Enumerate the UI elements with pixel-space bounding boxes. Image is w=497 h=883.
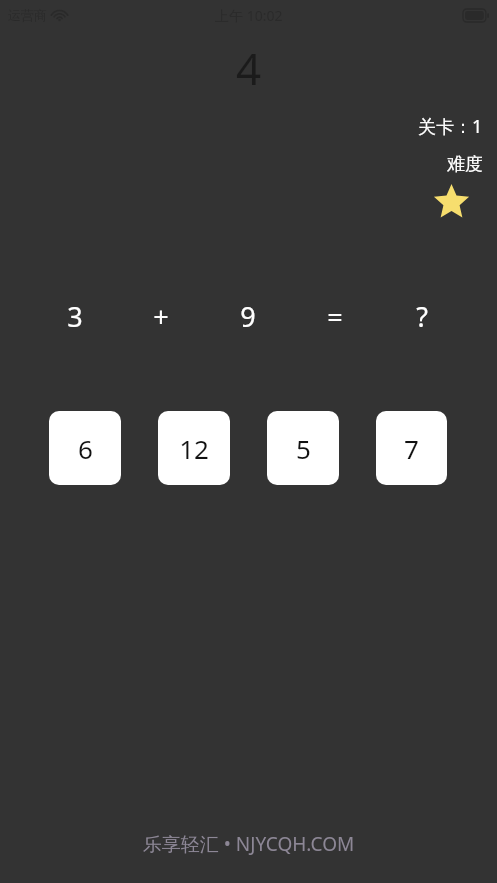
button[interactable]: 12 [158, 411, 230, 485]
button[interactable]: 7 [376, 411, 447, 485]
button[interactable]: 5 [267, 411, 339, 485]
staticText: 3 [67, 298, 83, 335]
button[interactable]: 6 [49, 411, 121, 485]
staticText: 9 [240, 298, 256, 335]
other: Battery [463, 9, 489, 22]
staticText: 6 [78, 431, 93, 466]
staticText: 关卡：1 [418, 114, 483, 139]
staticText: 7 [404, 431, 419, 466]
staticText: + [153, 298, 169, 335]
staticText: ? [416, 298, 428, 335]
other: Wi-Fi signal [52, 9, 67, 21]
staticText: 乐享轻汇 • NJYCQH.COM [0, 831, 497, 857]
staticText: = [327, 298, 343, 335]
button[interactable]: Difficulty one star [433, 184, 470, 221]
staticText: 5 [296, 431, 311, 466]
staticText: 难度 [447, 153, 483, 176]
staticText: 12 [179, 431, 209, 466]
